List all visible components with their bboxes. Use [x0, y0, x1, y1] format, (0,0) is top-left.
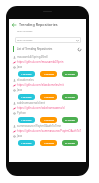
- staticText: eliasdorneles: [17, 78, 34, 82]
- staticText: Python: [17, 111, 26, 115]
- button[interactable]: 145 forks: [40, 71, 57, 77]
- staticText: sakshamsaxena/client: [17, 101, 45, 105]
- staticText: 145 forks: [44, 142, 54, 145]
- staticText: 21 issues: [65, 96, 75, 99]
- staticText: 1.3k stars: [21, 119, 32, 122]
- staticText: https://github.com/sakshamsaxena/cl: [17, 106, 65, 110]
- button[interactable]: eliasdorneles: [13, 78, 83, 101]
- button[interactable]: Refresh: [76, 46, 82, 52]
- button[interactable]: sakshamsaxena/client: [13, 101, 83, 124]
- button[interactable]: 145 forks: [40, 140, 57, 146]
- staticText: https://github.com/eliasdorneles/mit: [17, 83, 64, 87]
- staticText: 21 issues: [65, 73, 75, 76]
- staticText: List of Trending Repositories: [17, 47, 53, 51]
- staticText: 145 forks: [44, 119, 54, 122]
- button[interactable]: 1.3k stars: [18, 117, 35, 123]
- button[interactable]: 145 forks: [40, 94, 57, 100]
- button[interactable]: 1.3k stars: [18, 94, 35, 100]
- staticText: 1.3k stars: [21, 96, 32, 99]
- button[interactable]: 145 forks: [40, 117, 57, 123]
- staticText: 145 forks: [44, 73, 54, 76]
- staticText: summasource/PaytmOAuthToTime: [17, 124, 62, 128]
- staticText: Select Language: [17, 39, 33, 42]
- staticText: 21 issues: [65, 142, 75, 145]
- staticText: Java: [17, 134, 23, 138]
- staticText: Java: [17, 65, 23, 69]
- button[interactable]: Select Language: [15, 37, 81, 43]
- button[interactable]: 1.3k stars: [18, 140, 35, 146]
- staticText: 1.3k stars: [21, 73, 32, 76]
- button[interactable]: 21 issues: [62, 94, 78, 100]
- staticText: 1.3k stars: [21, 142, 32, 145]
- staticText: Java: [17, 88, 23, 92]
- staticText: 145 forks: [44, 96, 54, 99]
- staticText: mausamb4/Spring4Shell: [17, 55, 48, 59]
- staticText: https://github.com/summasource/PaytmOAut…: [17, 129, 82, 133]
- button[interactable]: 1.3k stars: [18, 71, 35, 77]
- staticText: 21 issues: [65, 119, 75, 122]
- button[interactable]: 21 issues: [62, 117, 78, 123]
- button[interactable]: Back: [10, 21, 18, 29]
- staticText: Trending Repositories: [19, 22, 58, 27]
- staticText: Select Language: [17, 30, 33, 33]
- button[interactable]: mausamb4/Spring4Shell: [13, 55, 83, 78]
- button[interactable]: summasource/PaytmOAuthToTime: [13, 124, 83, 147]
- button[interactable]: 21 issues: [62, 140, 78, 146]
- staticText: https://github.com/mausamb4/Sprin: [17, 60, 64, 64]
- button[interactable]: 21 issues: [62, 71, 78, 77]
